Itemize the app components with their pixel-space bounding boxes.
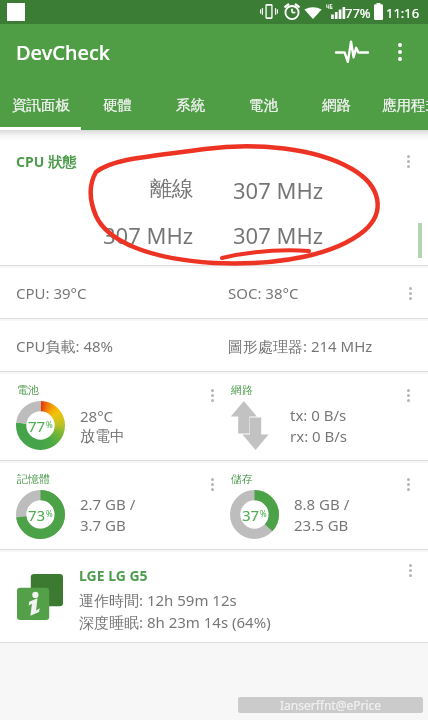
staticText: 資訊面板 <box>12 96 70 114</box>
button[interactable]: More options <box>376 28 424 76</box>
staticText: 電池 <box>17 383 39 397</box>
staticText: 11:16 <box>386 4 420 22</box>
staticText: Ianserffnt@ePrice <box>280 697 382 713</box>
staticText: CPU: 39°C <box>16 283 87 303</box>
button[interactable]: 系統 <box>154 80 227 130</box>
staticText: 離線 <box>150 175 194 203</box>
staticText: 系統 <box>176 96 205 114</box>
staticText: DevCheck <box>16 39 110 66</box>
staticText: SOC: 38°C <box>228 283 299 303</box>
staticText: 深度睡眠: 8h 23m 14s (64%) <box>79 612 271 632</box>
staticText: 307 MHz <box>103 220 194 250</box>
staticText: 2.7 GB / <box>80 494 136 514</box>
staticText: 3.7 GB <box>80 515 126 535</box>
button[interactable]: Live monitor <box>328 28 376 76</box>
staticText: 28°C <box>80 406 114 426</box>
staticText: 應用程式 <box>382 96 428 114</box>
staticText: 37 <box>242 505 260 525</box>
staticText: 圖形處理器: 214 MHz <box>228 336 373 356</box>
staticText: 儲存 <box>231 472 253 486</box>
staticText: CPU負載: 48% <box>16 336 114 356</box>
button[interactable]: More options <box>398 281 422 305</box>
button[interactable]: More options <box>398 558 422 582</box>
staticText: 77% <box>345 4 371 22</box>
staticText: % <box>260 508 267 519</box>
button[interactable]: 電池 <box>227 80 300 130</box>
staticText: 23.5 GB <box>294 515 349 535</box>
staticText: % <box>46 508 53 519</box>
staticText: 網路 <box>322 96 351 114</box>
button[interactable]: More options <box>200 383 224 407</box>
staticText: LGE LG G5 <box>79 566 148 585</box>
button[interactable]: More options <box>396 383 420 407</box>
staticText: 電池 <box>249 96 278 114</box>
staticText: 307 MHz <box>233 220 324 250</box>
staticText: 運作時間: 12h 59m 12s <box>79 590 237 610</box>
staticText: 307 MHz <box>233 175 324 205</box>
button[interactable]: More options <box>396 472 420 496</box>
staticText: 硬體 <box>103 96 132 114</box>
button[interactable]: 資訊面板 <box>0 80 81 130</box>
staticText: 放電中 <box>80 427 125 446</box>
button[interactable]: 應用程式 <box>382 80 428 130</box>
button[interactable]: 硬體 <box>81 80 154 130</box>
staticText: rx: 0 B/s <box>290 426 348 446</box>
staticText: 77 <box>28 416 46 436</box>
staticText: 記憶體 <box>17 472 50 486</box>
staticText: % <box>46 419 53 430</box>
staticText: 73 <box>28 505 46 525</box>
staticText: CPU 狀態 <box>16 152 76 171</box>
button[interactable]: More options <box>396 149 420 173</box>
staticText: 網路 <box>231 383 253 397</box>
button[interactable]: More options <box>200 472 224 496</box>
staticText: tx: 0 B/s <box>290 405 347 425</box>
button[interactable]: 網路 <box>300 80 373 130</box>
staticText: 8.8 GB / <box>294 494 350 514</box>
